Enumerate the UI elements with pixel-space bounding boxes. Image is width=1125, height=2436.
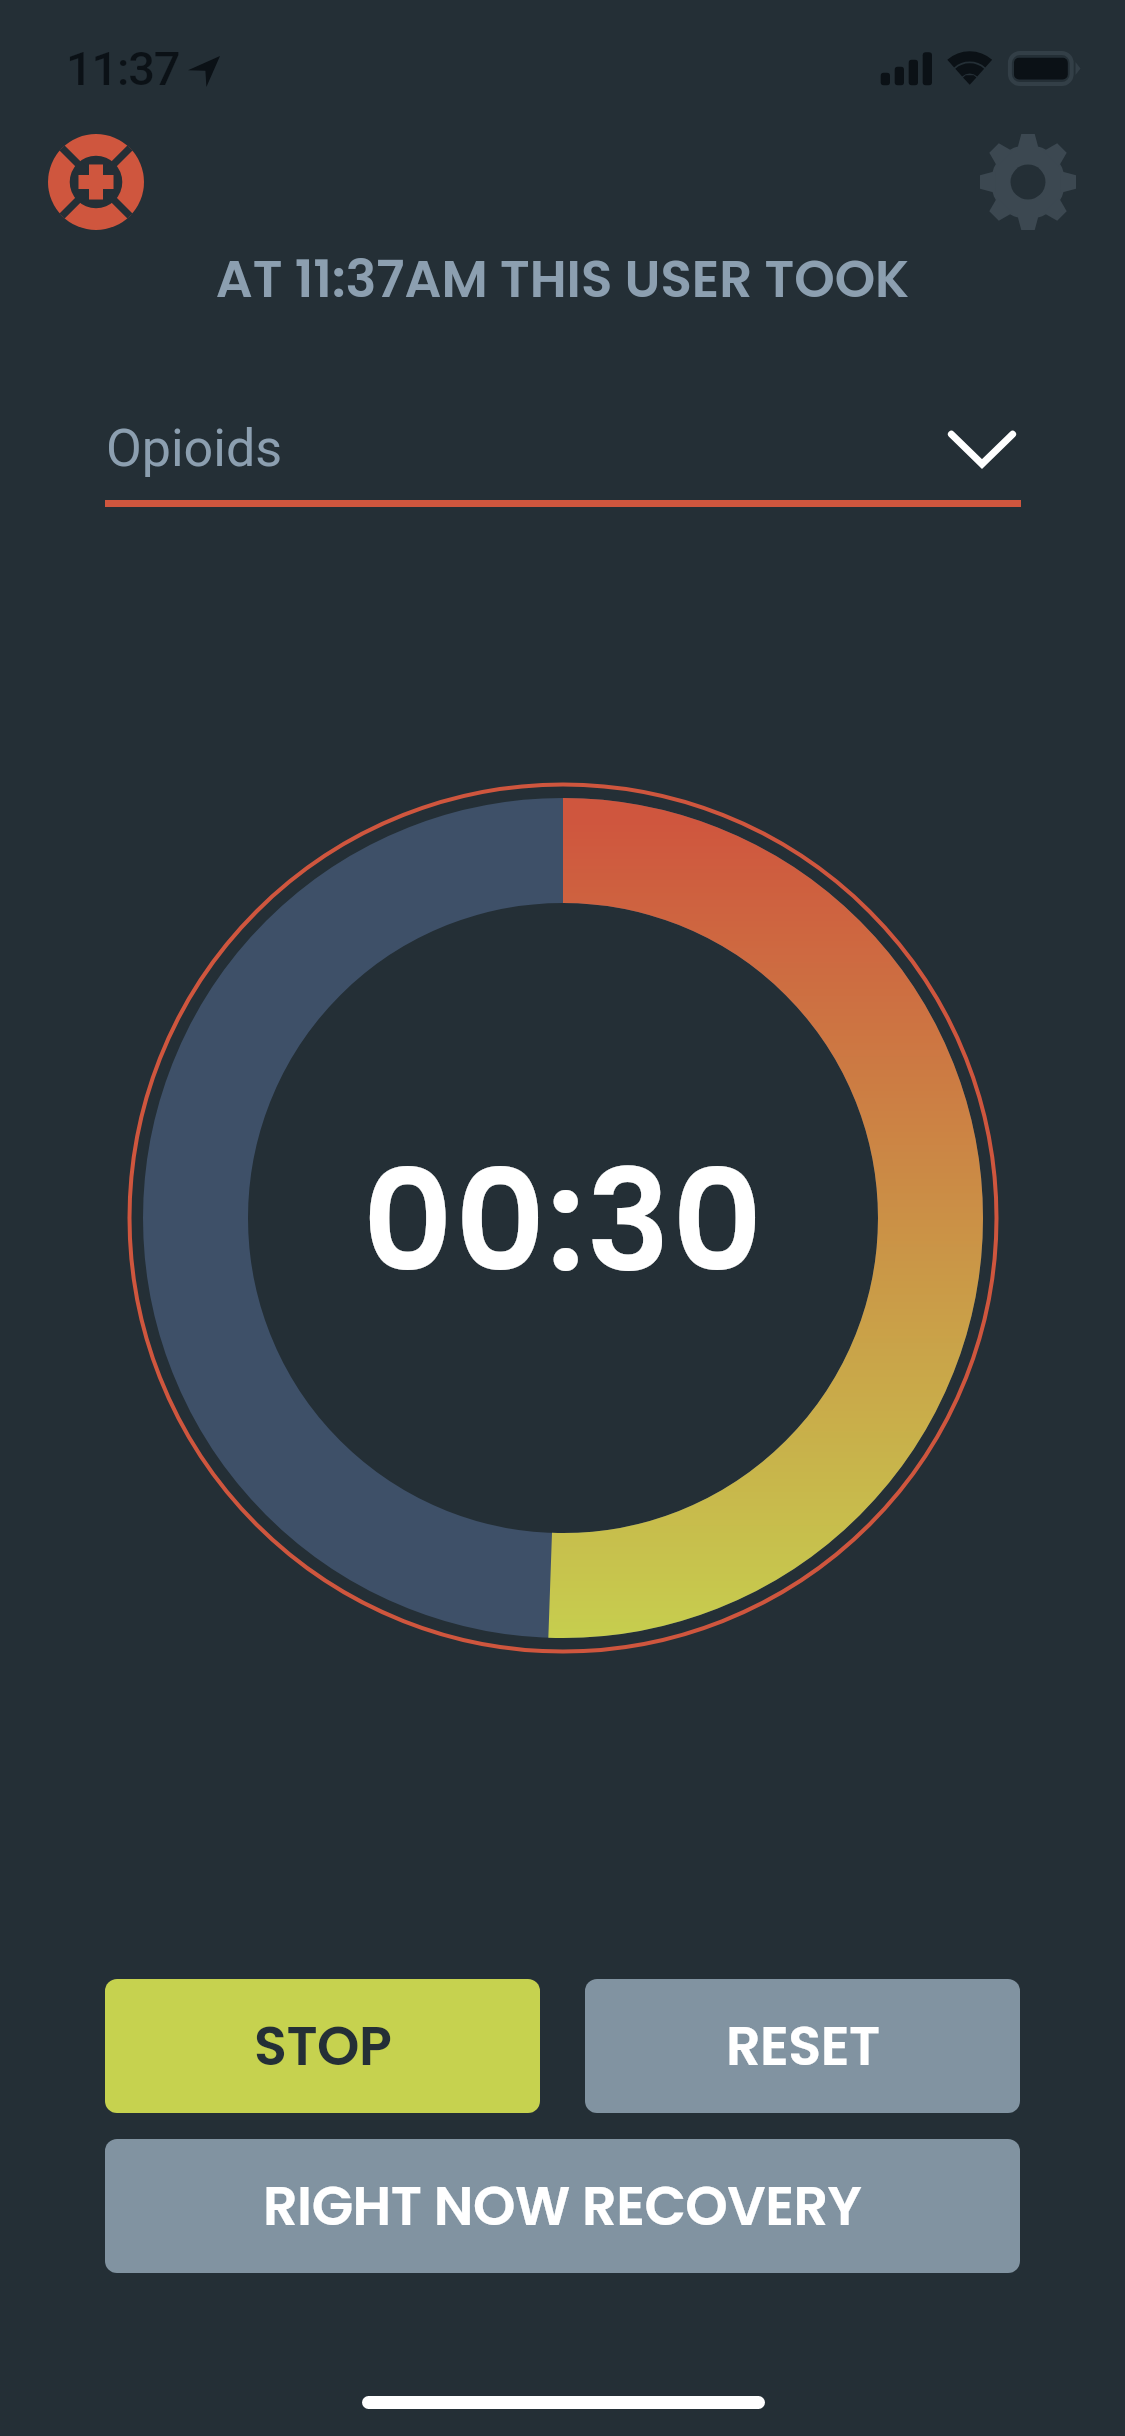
button[interactable]: STOP bbox=[105, 1979, 540, 2113]
button[interactable]: Opioids bbox=[105, 400, 1021, 512]
button[interactable]: RESET bbox=[585, 1979, 1020, 2113]
staticText: RESET bbox=[726, 2008, 880, 2084]
button[interactable]: RIGHT NOW RECOVERY bbox=[105, 2139, 1020, 2273]
staticText: STOP bbox=[254, 2008, 392, 2084]
button[interactable]: Settings bbox=[980, 134, 1076, 230]
staticText: Opioids bbox=[106, 418, 283, 479]
staticText: AT 11:37AM THIS USER TOOK bbox=[0, 243, 1125, 315]
staticText: 11:37 bbox=[66, 41, 180, 96]
staticText: 00:30 bbox=[1, 1123, 1125, 1319]
staticText: RIGHT NOW RECOVERY bbox=[263, 2168, 862, 2244]
button[interactable]: Emergency help bbox=[48, 134, 144, 230]
